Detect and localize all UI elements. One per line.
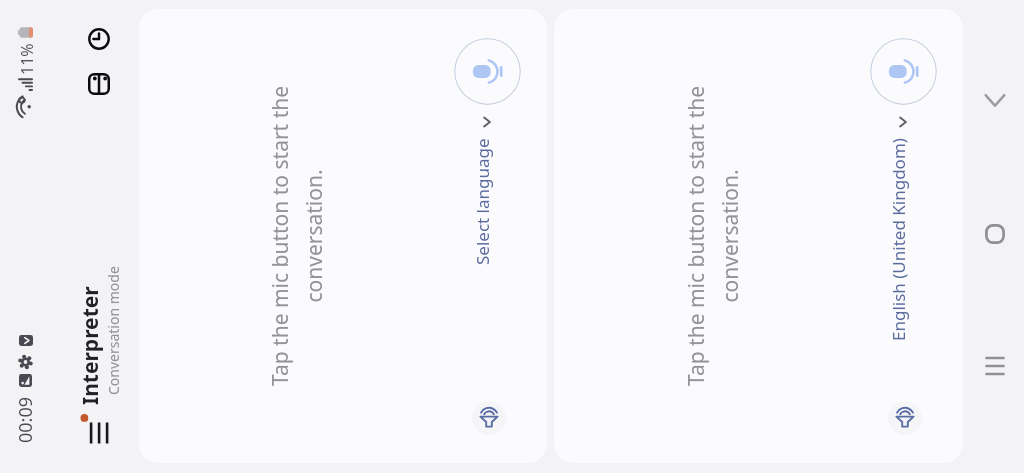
button[interactable]: Start conversation xyxy=(454,38,521,105)
staticText: Tap the mic button to start the conversa… xyxy=(266,71,328,401)
button[interactable]: Speaker xyxy=(888,401,922,435)
staticText: 00:09 xyxy=(13,396,38,443)
staticText: 11% xyxy=(16,43,38,75)
button[interactable]: Speaker xyxy=(472,401,506,435)
staticText: Conversation mode xyxy=(104,266,123,395)
staticText: Select language xyxy=(471,138,494,265)
button[interactable]: History xyxy=(80,20,118,58)
button[interactable]: Select language xyxy=(469,113,496,267)
button[interactable]: Recents xyxy=(975,346,1015,386)
button[interactable]: Start conversation xyxy=(870,38,937,105)
button[interactable]: English (United Kingdom) xyxy=(885,113,912,343)
button[interactable]: Menu xyxy=(76,408,116,450)
staticText: Interpreter xyxy=(76,286,105,405)
staticText: Tap the mic button to start the conversa… xyxy=(682,71,744,401)
button[interactable]: Home xyxy=(975,214,1015,254)
button[interactable]: Back xyxy=(975,80,1015,120)
button[interactable]: Split screen xyxy=(80,65,118,103)
staticText: English (United Kingdom) xyxy=(887,138,910,341)
